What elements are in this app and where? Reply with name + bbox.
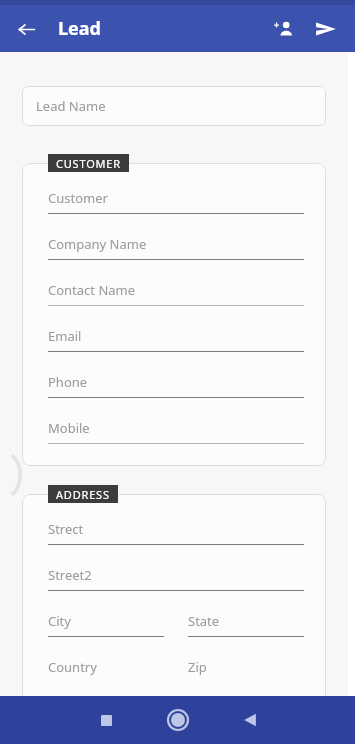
staticText: Customer: [48, 189, 108, 207]
button[interactable]: Email: [48, 327, 304, 352]
button[interactable]: Country: [48, 658, 164, 681]
staticText: Country: [48, 658, 97, 676]
button[interactable]: Strect: [48, 520, 304, 545]
staticText: Email: [48, 327, 82, 345]
button[interactable]: Lead Name: [22, 86, 326, 126]
button[interactable]: Home: [154, 696, 202, 744]
staticText: Lead Name: [36, 97, 106, 115]
button[interactable]: Back: [6, 9, 46, 49]
staticText: Phone: [48, 373, 88, 391]
staticText: Street2: [48, 566, 92, 584]
button[interactable]: Mobile: [48, 419, 304, 444]
staticText: CUSTOMER: [56, 156, 121, 171]
button[interactable]: City: [48, 612, 164, 637]
staticText: Company Name: [48, 235, 147, 253]
staticText: Lead: [58, 16, 101, 41]
button[interactable]: Customer: [48, 189, 304, 214]
button[interactable]: State: [188, 612, 304, 637]
button[interactable]: Add person: [263, 8, 305, 50]
staticText: ADDRESS: [56, 487, 110, 502]
button[interactable]: Company Name: [48, 235, 304, 260]
staticText: Mobile: [48, 419, 90, 437]
button[interactable]: Contact Name: [48, 281, 304, 306]
button[interactable]: Back: [226, 696, 274, 744]
staticText: State: [188, 612, 220, 630]
button[interactable]: Send: [305, 8, 347, 50]
staticText: Strect: [48, 520, 84, 538]
staticText: Contact Name: [48, 281, 136, 299]
button[interactable]: Phone: [48, 373, 304, 398]
button[interactable]: Street2: [48, 566, 304, 591]
staticText: City: [48, 612, 71, 630]
button[interactable]: Recent apps: [82, 696, 130, 744]
staticText: Zip: [188, 658, 207, 676]
button[interactable]: Zip: [188, 658, 304, 681]
